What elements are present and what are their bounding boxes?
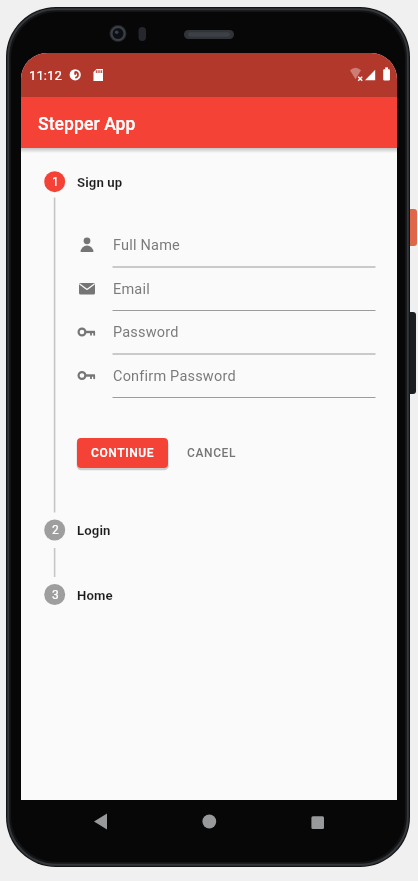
- staticText: Stepper App: [38, 114, 136, 135]
- staticText: Home: [77, 588, 113, 603]
- staticText: Password: [113, 324, 179, 341]
- staticText: 11:12: [29, 68, 62, 83]
- staticText: 2: [52, 523, 59, 537]
- staticText: CONTINUE: [91, 446, 155, 460]
- staticText: Email: [113, 281, 150, 298]
- staticText: CANCEL: [187, 446, 237, 460]
- staticText: Full Name: [113, 237, 180, 254]
- staticText: Confirm Password: [113, 368, 236, 385]
- staticText: 3: [52, 588, 59, 602]
- staticText: 1: [52, 175, 59, 189]
- staticText: Sign up: [77, 175, 123, 190]
- staticText: Login: [77, 523, 111, 538]
